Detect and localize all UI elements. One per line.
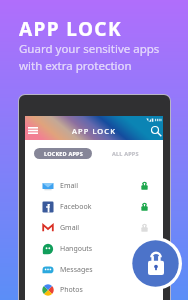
staticText: Email xyxy=(60,181,78,191)
staticText: Photos xyxy=(60,285,83,295)
button[interactable]: LOCKED APPS xyxy=(34,148,92,159)
staticText: Facebook xyxy=(60,202,92,212)
staticText: APP LOCK xyxy=(72,126,117,136)
staticText: APP LOCK xyxy=(19,16,122,42)
button[interactable]: Gmail xyxy=(25,217,163,238)
button[interactable]: Email xyxy=(25,175,163,196)
staticText: Guard your sensitive apps with extra pro… xyxy=(19,41,160,74)
button[interactable]: Lock apps xyxy=(129,237,182,290)
staticText: Gmail xyxy=(60,223,80,233)
staticText: ALL APPS xyxy=(112,150,139,157)
button[interactable]: Messages xyxy=(25,259,163,280)
button[interactable]: Facebook xyxy=(25,196,163,217)
staticText: Messages xyxy=(60,265,93,275)
button[interactable]: Menu xyxy=(26,121,39,140)
button[interactable]: Photos xyxy=(25,280,163,300)
staticText: LOCKED APPS xyxy=(44,150,83,157)
staticText: Hangouts xyxy=(60,244,93,254)
button[interactable]: ALL APPS xyxy=(103,148,148,159)
button[interactable]: Hangouts xyxy=(25,238,163,259)
button[interactable]: Search xyxy=(149,121,162,140)
